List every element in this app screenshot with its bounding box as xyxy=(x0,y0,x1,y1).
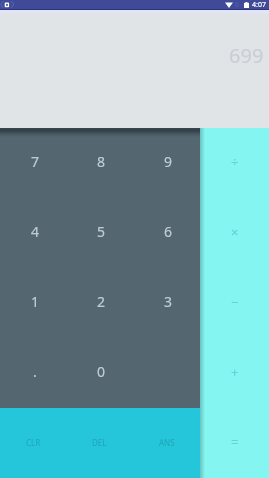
staticText: 0 xyxy=(97,362,106,381)
staticText: − xyxy=(231,293,239,311)
staticText: = xyxy=(231,433,239,451)
staticText: × xyxy=(231,223,239,241)
button[interactable]: 0 xyxy=(66,338,133,408)
button[interactable]: Multiply xyxy=(200,198,269,268)
button[interactable]: 3 xyxy=(133,268,200,338)
button[interactable]: 6 xyxy=(133,198,200,268)
staticText: ÷ xyxy=(231,153,239,171)
staticText: DEL xyxy=(92,437,107,448)
button[interactable]: 8 xyxy=(66,128,133,198)
staticText: CLR xyxy=(26,437,41,448)
button[interactable]: 2 xyxy=(66,268,133,338)
staticText: 9 xyxy=(164,152,173,171)
staticText: 2 xyxy=(97,292,106,311)
staticText: + xyxy=(231,363,239,381)
button[interactable]: Add xyxy=(200,338,269,408)
staticText: 4 xyxy=(31,222,40,241)
staticText: 5 xyxy=(97,222,106,241)
staticText: 699 xyxy=(229,42,264,69)
staticText: 1 xyxy=(31,292,40,311)
button[interactable]: 1 xyxy=(0,268,66,338)
button[interactable]: 7 xyxy=(0,128,66,198)
staticText: 4:07 xyxy=(252,0,266,9)
button[interactable]: Subtract xyxy=(200,268,269,338)
button[interactable]: Equals xyxy=(200,408,269,478)
staticText: 3 xyxy=(164,292,173,311)
staticText: 8 xyxy=(97,152,106,171)
button[interactable]: 4 xyxy=(0,198,66,268)
button[interactable]: 5 xyxy=(66,198,133,268)
button[interactable]: 9 xyxy=(133,128,200,198)
staticText: 6 xyxy=(164,222,173,241)
staticText: 7 xyxy=(31,152,40,171)
staticText: ANS xyxy=(159,437,175,448)
staticText: . xyxy=(33,362,37,381)
button[interactable]: Divide xyxy=(200,128,269,198)
